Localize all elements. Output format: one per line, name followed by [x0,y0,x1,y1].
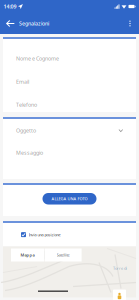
staticText: Email [16,78,29,85]
button[interactable]: Mappa [11,248,44,261]
button[interactable]: Street View [113,289,126,300]
staticText: Nome e Cognome [16,55,59,62]
staticText: Invia una posizione [29,232,61,237]
staticText: ALLEGA UNA FOTO [51,196,87,201]
staticText: Telefono [16,101,37,108]
staticText: Mappa [20,252,34,258]
staticText: Satellite [57,252,70,258]
button[interactable]: Satellite [45,248,82,261]
staticText: Messaggio [16,149,43,156]
staticText: Segnalazioni [19,20,49,27]
button[interactable]: Invia una posizione [3,232,136,237]
staticText: 14:09 [3,3,16,10]
staticText: Oggetto [16,127,36,134]
button[interactable]: ALLEGA UNA FOTO [42,193,96,204]
staticText: Torre di [113,265,127,271]
button[interactable]: Back [2,13,19,34]
button[interactable]: More options [123,13,137,34]
